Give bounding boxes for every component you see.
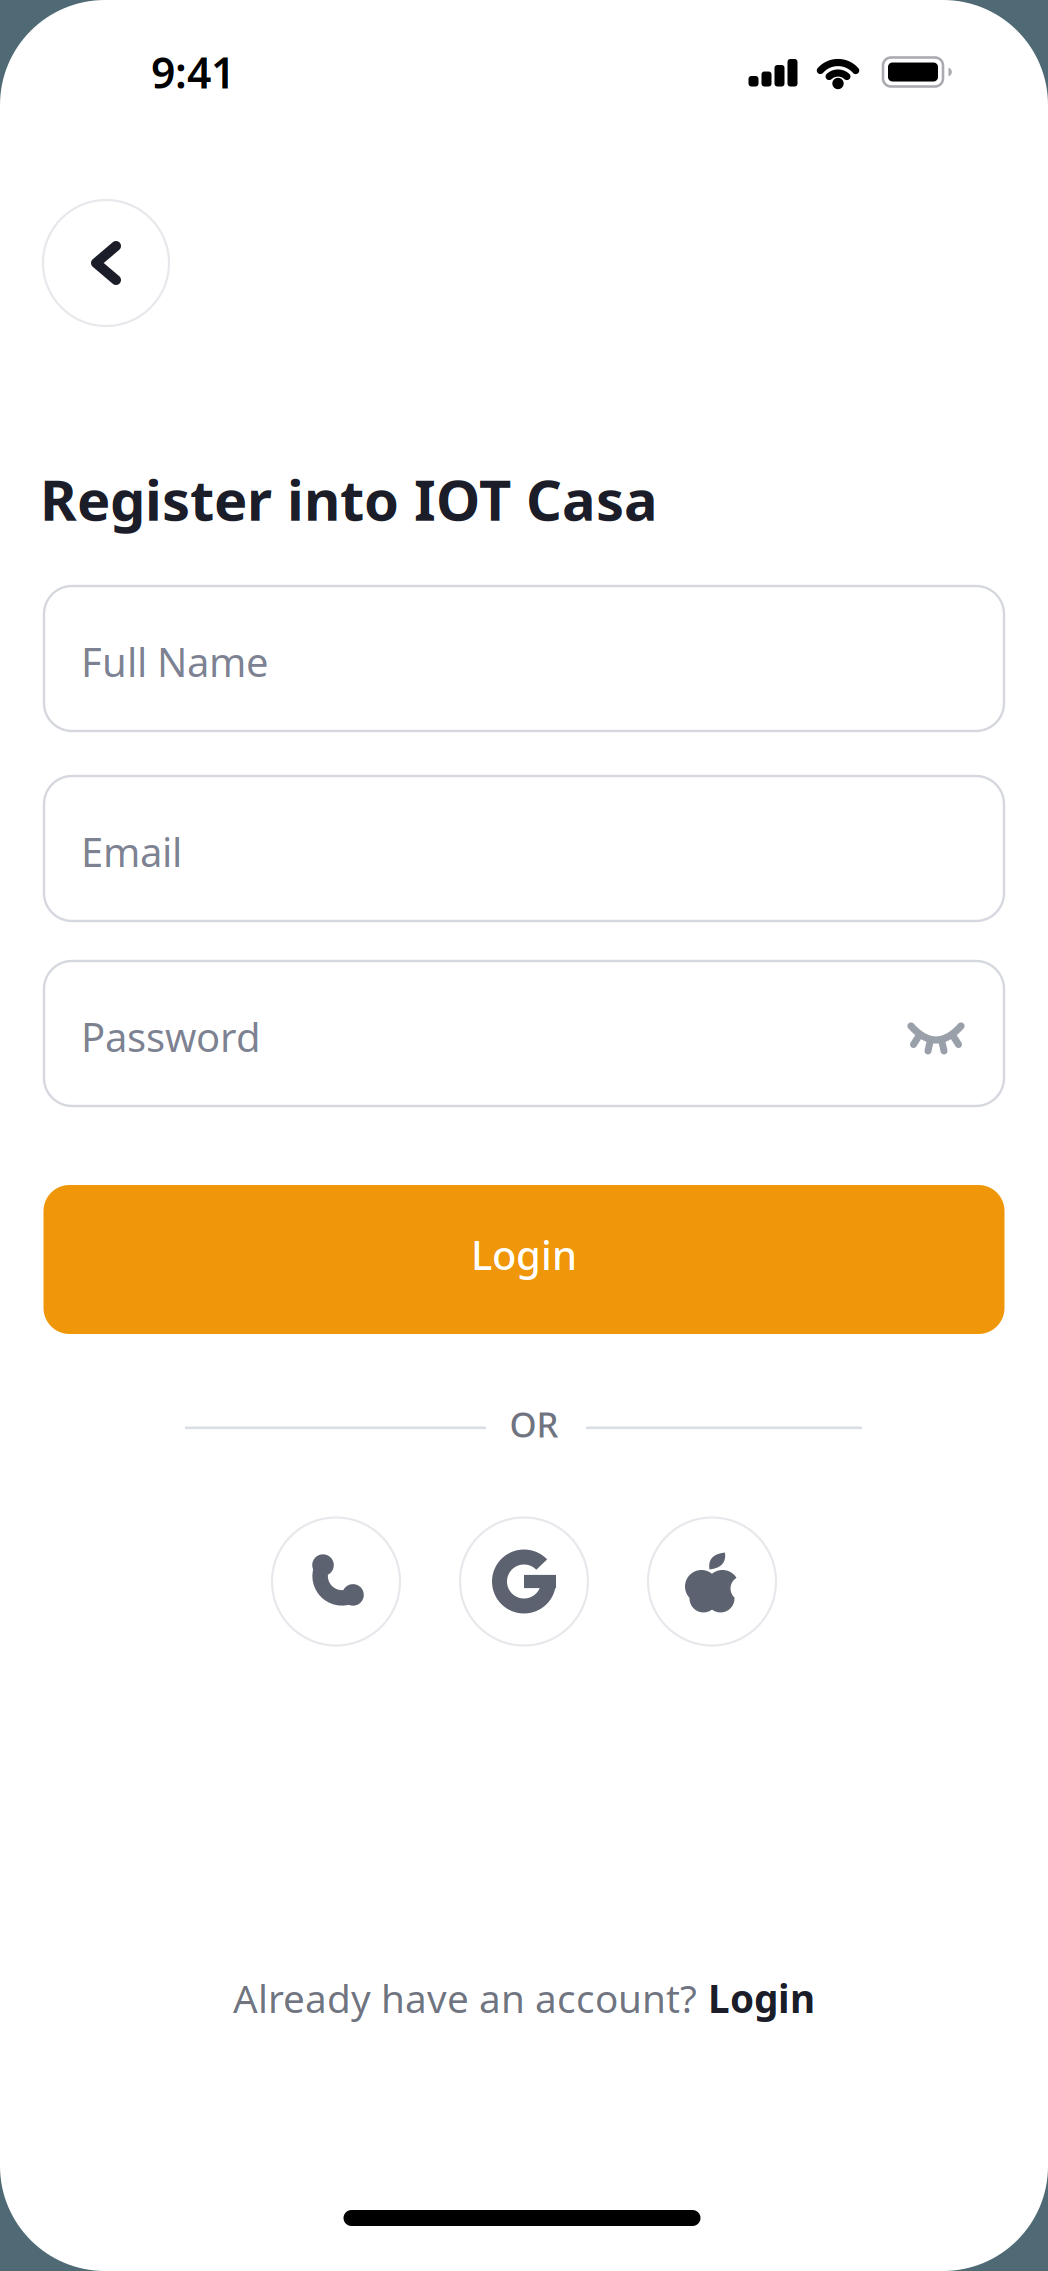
button[interactable]: Back: [43, 200, 169, 326]
staticText: Password: [81, 1010, 261, 1063]
staticText: Already have an account?: [233, 1972, 697, 2024]
button[interactable]: Show password: [906, 1018, 966, 1058]
staticText: Email: [81, 825, 182, 878]
button[interactable]: Sign up with phone: [272, 1517, 400, 1645]
staticText: Register into IOT Casa: [40, 462, 658, 536]
button[interactable]: Login: [43, 1185, 1004, 1334]
button[interactable]: Login: [708, 1972, 815, 2024]
button[interactable]: Full Name: [44, 586, 1004, 731]
staticText: Login: [708, 1972, 815, 2024]
staticText: Login: [471, 1228, 577, 1281]
button[interactable]: Sign up with Google: [460, 1517, 588, 1645]
staticText: 9:41: [151, 44, 235, 100]
staticText: Full Name: [81, 635, 269, 688]
button[interactable]: Password: [44, 961, 1004, 1106]
button[interactable]: Email: [44, 776, 1004, 921]
staticText: OR: [509, 1401, 558, 1447]
button[interactable]: Sign up with Apple: [648, 1517, 776, 1645]
